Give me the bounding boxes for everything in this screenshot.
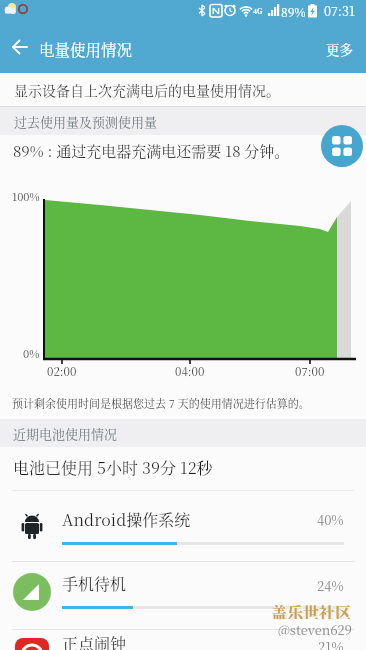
staticText: 02:00 [47, 363, 77, 377]
button[interactable]: 更多 [316, 24, 362, 73]
staticText: 预计剩余使用时间是根据您过去 7 天的使用情况进行估算的。 [12, 395, 310, 411]
staticText: 过去使用量及预测使用量 [14, 112, 158, 131]
staticText: 40% [317, 510, 344, 529]
staticText: 显示设备自上次充满电后的电量使用情况。 [14, 80, 280, 100]
button[interactable]: 正点闹钟 [0, 630, 366, 650]
staticText: 盖乐世社区 [271, 601, 352, 619]
staticText: 24% [317, 576, 344, 595]
staticText: 盖乐世社区 [273, 602, 354, 620]
staticText: @steven629 [278, 620, 352, 636]
staticText: Android操作系统 [62, 508, 191, 531]
button[interactable] [321, 125, 363, 167]
staticText: 手机待机 [62, 572, 127, 595]
staticText: 近期电池使用情况 [13, 424, 118, 443]
staticText: 21% [318, 637, 344, 650]
staticText: 89% [281, 3, 306, 20]
staticText: 电量使用情况 [39, 38, 133, 60]
staticText: 0% [23, 345, 40, 358]
staticText: 正点闹钟 [62, 632, 127, 650]
button[interactable] [4, 31, 36, 63]
staticText: 07:00 [295, 363, 325, 377]
button[interactable]: 手机待机 [0, 562, 366, 629]
staticText: 更多 [326, 39, 353, 58]
staticText: 电池已使用 5小时 39分 12秒 [13, 456, 213, 479]
staticText: 07:31 [324, 2, 355, 20]
staticText: 89% : 通过充电器充满电还需要 18 分钟。 [13, 140, 290, 162]
staticText: 100% [12, 188, 40, 201]
staticText: 04:00 [175, 363, 205, 377]
staticText: 4G [253, 6, 263, 16]
button[interactable]: Android操作系统 [0, 495, 366, 561]
